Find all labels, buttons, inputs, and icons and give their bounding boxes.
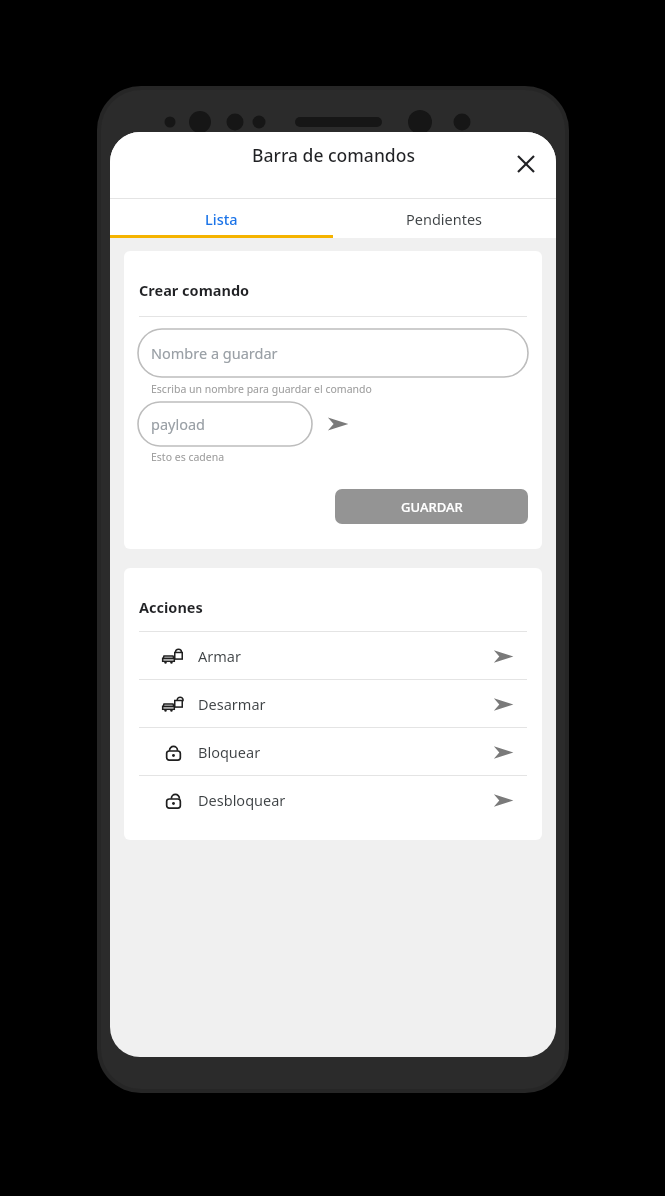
- staticText: Barra de comandos: [252, 143, 415, 167]
- button[interactable]: Desarmar: [124, 680, 542, 727]
- staticText: Lista: [205, 209, 238, 229]
- button[interactable]: Bloquear: [124, 728, 542, 775]
- button[interactable]: GUARDAR: [335, 489, 528, 524]
- button[interactable]: Armar: [124, 632, 542, 679]
- staticText: Acciones: [139, 597, 203, 617]
- button[interactable]: Enviar Armar: [486, 639, 520, 673]
- button[interactable]: Lista: [110, 199, 333, 238]
- button[interactable]: Cerrar: [504, 142, 548, 186]
- staticText: payload: [151, 414, 206, 434]
- button[interactable]: Enviar Bloquear: [486, 735, 520, 769]
- staticText: Desarmar: [198, 694, 266, 714]
- staticText: Armar: [198, 646, 241, 666]
- button[interactable]: Enviar Desbloquear: [486, 783, 520, 817]
- staticText: Crear comando: [139, 280, 250, 300]
- button[interactable]: Enviar: [318, 404, 358, 444]
- staticText: GUARDAR: [401, 498, 463, 516]
- staticText: Pendientes: [406, 209, 483, 229]
- button[interactable]: Desbloquear: [124, 776, 542, 823]
- staticText: Nombre a guardar: [151, 343, 278, 363]
- staticText: Desbloquear: [198, 790, 286, 810]
- staticText: Bloquear: [198, 742, 261, 762]
- button[interactable]: Nombre a guardar: [138, 329, 528, 377]
- button[interactable]: Pendientes: [333, 199, 556, 238]
- staticText: Escriba un nombre para guardar el comand…: [151, 382, 372, 396]
- button[interactable]: payload: [138, 402, 312, 446]
- button[interactable]: Enviar Desarmar: [486, 687, 520, 721]
- staticText: Esto es cadena: [151, 450, 225, 464]
